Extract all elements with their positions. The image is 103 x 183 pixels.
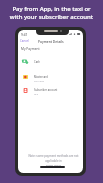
staticText: Note: some payment methods are not appli… bbox=[24, 154, 83, 167]
staticText: Payment Details bbox=[38, 39, 64, 43]
staticText: 9:41 bbox=[21, 33, 28, 37]
button[interactable]: Cash bbox=[18, 57, 83, 71]
staticText: Mastercard bbox=[34, 75, 48, 79]
staticText: Cash bbox=[34, 60, 40, 64]
button[interactable]: Subscriber account bbox=[18, 86, 83, 100]
button[interactable]: Cancel bbox=[20, 39, 29, 43]
staticText: My Payment bbox=[21, 47, 40, 51]
staticText: ID 8 bbox=[34, 93, 38, 96]
staticText: Pay from App, in the taxi or with your s… bbox=[0, 5, 103, 21]
button[interactable]: Mastercard bbox=[18, 73, 83, 87]
staticText: **** 4242 bbox=[34, 80, 44, 83]
staticText: Subscriber account bbox=[34, 88, 58, 92]
